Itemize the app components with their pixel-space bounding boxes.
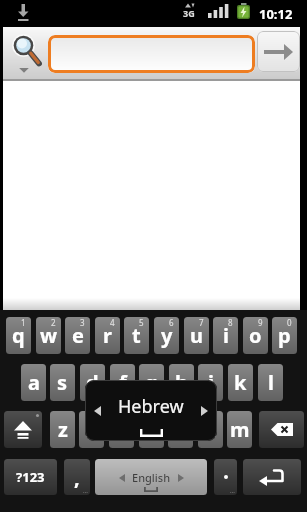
button[interactable] <box>243 459 301 495</box>
button[interactable]: y <box>154 317 179 354</box>
button[interactable] <box>48 35 255 73</box>
staticText: o <box>249 322 262 349</box>
button[interactable]: h <box>169 364 194 401</box>
button[interactable]: f <box>110 364 135 401</box>
button[interactable]: c <box>109 411 134 448</box>
button[interactable]: v <box>139 411 164 448</box>
button[interactable]: t <box>124 317 149 354</box>
button[interactable]: l <box>258 364 283 401</box>
staticText: h <box>175 369 188 396</box>
button[interactable]: i <box>213 317 238 354</box>
staticText: a <box>28 369 40 396</box>
staticText: b <box>174 416 187 443</box>
button[interactable] <box>4 411 42 448</box>
button[interactable]: d <box>80 364 105 401</box>
staticText: r <box>103 322 112 349</box>
button[interactable]: ?123 <box>4 459 57 495</box>
button[interactable]: z <box>50 411 75 448</box>
staticText: d <box>86 369 99 396</box>
staticText: e <box>72 322 84 349</box>
staticText: 3 <box>80 317 85 328</box>
button[interactable]: o <box>243 317 268 354</box>
staticText: s <box>57 369 68 396</box>
button[interactable]: n <box>198 411 223 448</box>
button[interactable]: x <box>79 411 104 448</box>
button[interactable]: a <box>21 364 46 401</box>
staticText: q <box>12 322 25 349</box>
button[interactable]: r <box>95 317 120 354</box>
staticText: ... <box>83 487 88 495</box>
staticText: , <box>74 464 80 491</box>
staticText: 6 <box>169 317 174 328</box>
button[interactable] <box>257 31 300 72</box>
button[interactable]: b <box>168 411 193 448</box>
staticText: 7 <box>199 317 204 328</box>
button[interactable]: q <box>6 317 31 354</box>
button[interactable]: p <box>272 317 297 354</box>
button[interactable]: w <box>36 317 61 354</box>
button[interactable]: k <box>228 364 253 401</box>
button[interactable]: Hebrew <box>85 380 217 441</box>
button[interactable]: ... <box>214 459 237 495</box>
button[interactable]: j <box>198 364 223 401</box>
staticText: English <box>132 470 171 485</box>
staticText: 9 <box>258 317 263 328</box>
staticText: 4 <box>110 317 115 328</box>
staticText: 0 <box>287 317 292 328</box>
button[interactable]: s <box>50 364 75 401</box>
staticText: x <box>86 416 98 443</box>
staticText: 3G <box>183 7 195 19</box>
staticText: u <box>190 322 203 349</box>
staticText: i <box>223 322 229 349</box>
staticText: w <box>40 322 58 349</box>
staticText: Hebrew <box>118 394 184 419</box>
staticText: 5 <box>139 317 144 328</box>
button[interactable]: , <box>64 459 90 495</box>
staticText: f <box>119 369 127 396</box>
staticText: 1 <box>21 317 26 328</box>
staticText: 2 <box>51 317 56 328</box>
button[interactable]: e <box>65 317 90 354</box>
button[interactable] <box>259 411 304 448</box>
staticText: k <box>234 369 247 396</box>
staticText: l <box>268 369 274 396</box>
staticText: 10:12 <box>259 5 293 23</box>
staticText: c <box>116 416 127 443</box>
staticText: ... <box>230 487 235 495</box>
staticText: j <box>208 369 214 396</box>
staticText: y <box>161 322 173 349</box>
button[interactable]: g <box>139 364 164 401</box>
staticText: ?123 <box>16 468 45 486</box>
staticText: z <box>58 416 68 443</box>
staticText: p <box>278 322 291 349</box>
staticText: m <box>230 416 250 443</box>
button[interactable]: u <box>184 317 209 354</box>
staticText: n <box>204 416 217 443</box>
button[interactable]: English <box>95 459 207 495</box>
staticText: 8 <box>228 317 233 328</box>
staticText: v <box>146 416 158 443</box>
button[interactable]: m <box>227 411 252 448</box>
staticText: g <box>145 369 158 396</box>
staticText: t <box>132 322 141 349</box>
